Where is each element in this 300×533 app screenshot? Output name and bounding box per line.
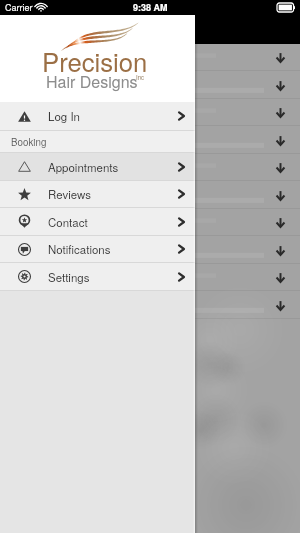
staticText: Log In (48, 108, 80, 124)
staticText: Reviews (48, 186, 91, 202)
staticText: Hair Designs (46, 70, 138, 93)
staticText: Carrier (5, 1, 33, 14)
staticText: Inc (136, 73, 145, 82)
button[interactable]: Reviews (0, 181, 195, 207)
button[interactable]: Contact (0, 208, 195, 235)
staticText: 9:38 AM (133, 1, 168, 14)
staticText: Booking (11, 135, 47, 149)
staticText: Precision (42, 42, 148, 79)
staticText: Appointments (48, 159, 119, 175)
button[interactable]: Settings (0, 263, 195, 290)
staticText: Contact (48, 214, 88, 230)
staticText: Notifications (48, 241, 111, 257)
button[interactable]: Appointments (0, 153, 195, 180)
button[interactable]: Log In (0, 102, 195, 130)
button[interactable]: Notifications (0, 236, 195, 262)
staticText: Settings (48, 269, 90, 285)
